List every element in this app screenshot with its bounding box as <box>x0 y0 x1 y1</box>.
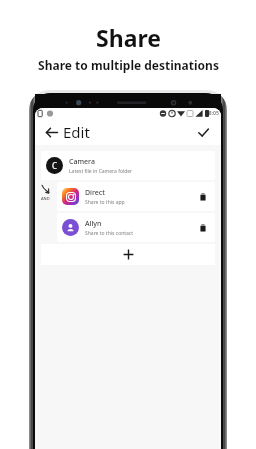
button[interactable]: C <box>41 151 215 180</box>
button[interactable]: Add destination <box>41 244 215 265</box>
staticText: C <box>52 160 58 171</box>
staticText: Share to this contact <box>85 230 134 237</box>
staticText: Share to multiple destinations <box>38 57 219 73</box>
staticText: Share <box>96 22 161 53</box>
staticText: 18:05 <box>206 110 219 117</box>
staticText: Camera <box>69 157 95 167</box>
staticText: AND <box>41 196 50 201</box>
button[interactable]: Done <box>194 123 212 141</box>
staticText: Latest file in Camera folder <box>69 168 133 175</box>
button[interactable]: Delete <box>196 190 210 204</box>
button[interactable]: Back <box>42 123 60 141</box>
staticText: Allyn <box>85 219 102 229</box>
staticText: Edit <box>63 122 90 142</box>
staticText: Direct <box>85 188 105 198</box>
staticText: Share to this app <box>85 199 125 206</box>
button[interactable]: Direct <box>57 182 215 211</box>
button[interactable]: Delete <box>196 221 210 235</box>
button[interactable]: Allyn <box>57 213 215 242</box>
